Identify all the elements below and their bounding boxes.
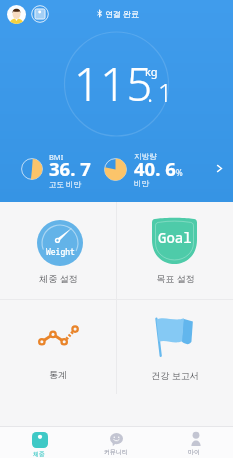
staticText: .1 bbox=[147, 75, 178, 109]
staticText: 통계 bbox=[49, 369, 67, 380]
staticText: 지방량 bbox=[134, 152, 157, 161]
button[interactable]: 마이 bbox=[155, 427, 233, 458]
staticText: 마이 bbox=[188, 448, 200, 456]
staticText: 커뮤니티 bbox=[104, 448, 128, 456]
button[interactable]: 통계 bbox=[0, 300, 116, 394]
button[interactable]: Profile bbox=[6, 4, 26, 24]
staticText: 115 bbox=[74, 53, 153, 114]
button[interactable]: BMI bbox=[0, 147, 233, 193]
staticText: 40. 6 bbox=[134, 156, 176, 181]
staticText: Weight bbox=[46, 246, 75, 257]
staticText: 건강 보고서 bbox=[151, 369, 199, 381]
staticText: % bbox=[176, 167, 183, 178]
button[interactable]: 건강 보고서 bbox=[117, 300, 233, 394]
staticText: 체중 설정 bbox=[39, 272, 78, 284]
staticText: 고도 비만 bbox=[49, 179, 81, 189]
staticText: BMI bbox=[49, 152, 64, 162]
button[interactable]: Weight bbox=[0, 202, 116, 299]
button[interactable]: Goal bbox=[117, 202, 233, 299]
staticText: 체중 bbox=[33, 450, 45, 458]
button[interactable]: 커뮤니티 bbox=[77, 427, 155, 458]
staticText: 36. 7 bbox=[49, 156, 91, 181]
staticText: Goal bbox=[158, 228, 192, 247]
staticText: 연결 완료 bbox=[105, 8, 140, 19]
staticText: 목표 설정 bbox=[156, 272, 195, 284]
staticText: 비만 bbox=[134, 179, 149, 188]
button[interactable]: Scale device bbox=[30, 4, 50, 24]
staticText: kg bbox=[145, 64, 158, 79]
button[interactable]: 체중 bbox=[0, 427, 77, 458]
